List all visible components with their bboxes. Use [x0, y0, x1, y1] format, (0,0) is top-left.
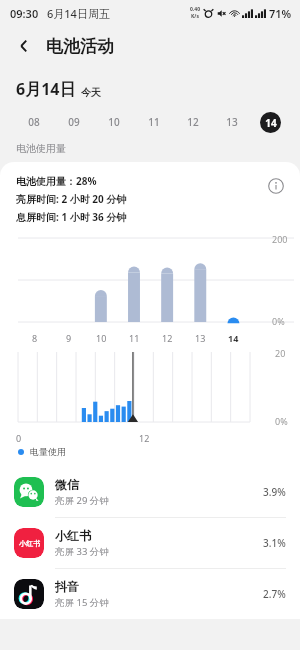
staticText: 小红书 — [55, 528, 91, 543]
staticText: 亮屏 29 分钟 — [55, 494, 109, 507]
button[interactable]: 08 — [14, 109, 54, 135]
staticText: 13 — [226, 115, 238, 129]
staticText: 电池使用量 — [16, 142, 66, 155]
staticText: 3.9% — [263, 485, 286, 499]
staticText: 14 — [265, 116, 277, 130]
staticText: 微信 — [55, 477, 79, 492]
staticText: 71% — [269, 6, 292, 21]
staticText: 8 — [32, 332, 38, 344]
staticText: 电量使用 — [30, 446, 66, 457]
staticText: 抖音 — [55, 579, 79, 594]
staticText: 12 — [187, 115, 199, 129]
staticText: 10 — [96, 332, 107, 344]
staticText: 14 — [228, 332, 239, 344]
staticText: 09:30 — [10, 6, 39, 21]
staticText: 12 — [139, 432, 150, 444]
staticText: 0.40 — [190, 6, 200, 13]
staticText: 2.7% — [263, 587, 286, 601]
staticText: 11 — [129, 332, 140, 344]
button[interactable]: Back — [8, 30, 40, 62]
button[interactable]: 13 — [212, 109, 251, 135]
staticText: 0% — [272, 315, 285, 327]
staticText: 20 — [275, 347, 286, 359]
staticText: 亮屏 15 分钟 — [55, 596, 109, 609]
staticText: 0% — [275, 415, 288, 427]
staticText: 200 — [272, 233, 288, 245]
staticText: 电池活动 — [46, 36, 114, 57]
staticText: 11 — [148, 115, 160, 129]
button[interactable]: 小红书 — [0, 518, 300, 569]
staticText: 亮屏 33 分钟 — [55, 545, 109, 558]
staticText: 9 — [66, 332, 72, 344]
button[interactable]: 抖音 — [0, 569, 300, 619]
staticText: 6月14日 — [16, 78, 76, 100]
staticText: 08 — [28, 115, 40, 129]
staticText: 10 — [108, 115, 120, 129]
button[interactable]: 14 — [251, 109, 290, 135]
staticText: 小红书 — [19, 539, 40, 548]
button[interactable]: 12 — [173, 109, 212, 135]
staticText: 0 — [16, 432, 22, 444]
staticText: 12 — [162, 332, 173, 344]
staticText: 6月14日周五 — [47, 6, 110, 21]
button[interactable]: 10 — [94, 109, 134, 135]
staticText: K/s — [191, 13, 199, 20]
button[interactable]: 11 — [134, 109, 173, 135]
staticText: 09 — [68, 115, 80, 129]
staticText: 3.1% — [263, 536, 286, 550]
button[interactable]: 微信 — [0, 467, 300, 518]
staticText: 今天 — [81, 86, 101, 99]
staticText: 息屏时间: 1 小时 36 分钟 — [16, 210, 127, 224]
staticText: 13 — [195, 332, 206, 344]
staticText: 电池使用量：28% — [16, 174, 97, 188]
button[interactable]: 09 — [54, 109, 94, 135]
staticText: 亮屏时间: 2 小时 20 分钟 — [16, 192, 127, 206]
button[interactable]: Info — [264, 174, 288, 198]
